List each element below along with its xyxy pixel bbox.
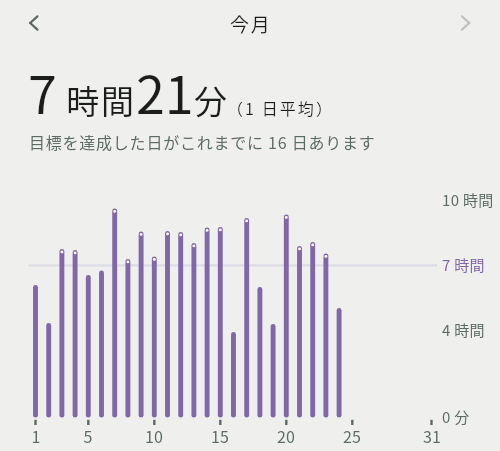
staticText: 31 bbox=[412, 424, 452, 447]
staticText: 今月 bbox=[230, 10, 272, 38]
staticText: 7 bbox=[28, 54, 57, 129]
staticText: 分 bbox=[194, 76, 227, 124]
staticText: 15 bbox=[200, 424, 240, 447]
button[interactable]: Previous month bbox=[16, 6, 50, 40]
staticText: 4 時間 bbox=[442, 319, 485, 341]
staticText: 時間 bbox=[57, 76, 136, 124]
staticText: 目標を達成した日がこれまでに 16 日あります bbox=[29, 130, 376, 153]
staticText: 5 bbox=[68, 424, 108, 447]
staticText: 1 bbox=[16, 424, 56, 447]
staticText: 25 bbox=[332, 424, 372, 447]
staticText: 10 bbox=[134, 424, 174, 447]
button[interactable]: Next month bbox=[449, 6, 483, 40]
staticText: （1 日平均） bbox=[227, 96, 335, 119]
staticText: 0 分 bbox=[442, 406, 470, 428]
staticText: 7 時間 bbox=[442, 254, 485, 276]
staticText: 20 bbox=[266, 424, 306, 447]
staticText: 21 bbox=[136, 54, 194, 129]
staticText: 10 時間 bbox=[442, 189, 494, 211]
